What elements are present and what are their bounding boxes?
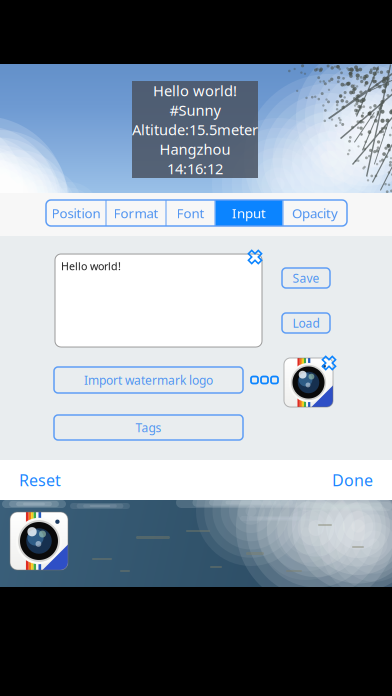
button[interactable]: Watermark logo bbox=[284, 358, 333, 407]
button[interactable]: Tags bbox=[54, 415, 243, 440]
staticText: Save bbox=[292, 270, 319, 286]
staticText: Hello world! bbox=[61, 259, 121, 273]
staticText: Altitude:15.5meter bbox=[132, 120, 258, 139]
button[interactable]: Done bbox=[321, 465, 373, 495]
button[interactable]: Import watermark logo bbox=[54, 367, 243, 393]
staticText: Reset bbox=[19, 469, 61, 491]
button[interactable]: Opacity bbox=[283, 200, 346, 226]
staticText: 14:16:12 bbox=[167, 159, 223, 178]
staticText: Load bbox=[292, 315, 319, 331]
button[interactable]: Position bbox=[46, 200, 105, 226]
staticText: Format bbox=[113, 204, 158, 222]
staticText: Input bbox=[232, 204, 266, 222]
staticText: Import watermark logo bbox=[84, 372, 213, 388]
button[interactable]: Load bbox=[282, 313, 330, 333]
staticText: Tags bbox=[135, 419, 161, 435]
staticText: Opacity bbox=[292, 204, 338, 222]
button[interactable]: Format bbox=[106, 200, 165, 226]
button[interactable]: Font bbox=[166, 200, 214, 226]
staticText: Hangzhou bbox=[159, 139, 230, 159]
staticText: #Sunny bbox=[169, 100, 220, 120]
button[interactable]: Save bbox=[282, 268, 330, 288]
staticText: Font bbox=[176, 204, 204, 222]
button[interactable]: Remove logo bbox=[320, 354, 338, 372]
button[interactable]: Clear text bbox=[246, 248, 264, 266]
button[interactable]: Reset bbox=[19, 465, 71, 495]
staticText: Position bbox=[51, 204, 100, 222]
staticText: Done bbox=[332, 469, 373, 491]
button[interactable]: More options bbox=[250, 371, 279, 389]
button[interactable]: Input bbox=[215, 200, 282, 226]
staticText: Hello world! bbox=[153, 81, 237, 100]
